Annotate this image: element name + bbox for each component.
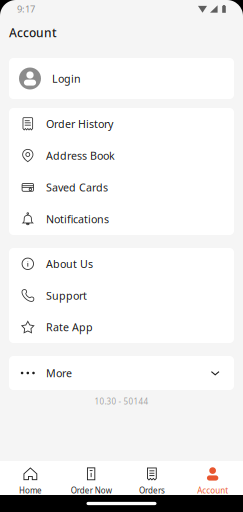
button[interactable]: More bbox=[9, 356, 234, 390]
staticText: About Us bbox=[46, 257, 93, 271]
staticText: Orders bbox=[139, 485, 165, 496]
button[interactable]: Support bbox=[9, 280, 234, 311]
button[interactable]: Address Book bbox=[9, 140, 234, 171]
staticText: 9:17 bbox=[17, 3, 35, 15]
button[interactable]: Notifications bbox=[9, 203, 234, 235]
staticText: Saved Cards bbox=[46, 180, 108, 194]
staticText: Home bbox=[19, 485, 42, 496]
staticText: Login bbox=[52, 71, 81, 86]
staticText: More bbox=[46, 366, 72, 380]
staticText: Account bbox=[9, 24, 57, 40]
button[interactable]: Login bbox=[9, 58, 234, 99]
button[interactable]: Saved Cards bbox=[9, 171, 234, 203]
staticText: Support bbox=[46, 288, 87, 303]
button[interactable]: About Us bbox=[9, 248, 234, 280]
button[interactable]: Orders bbox=[121, 461, 182, 495]
staticText: Rate App bbox=[46, 320, 93, 334]
button[interactable]: Rate App bbox=[9, 311, 234, 343]
button[interactable]: Order Now bbox=[61, 461, 122, 495]
button[interactable]: Account bbox=[182, 461, 243, 495]
button[interactable]: Order History bbox=[9, 108, 234, 140]
staticText: Order Now bbox=[71, 485, 112, 496]
staticText: Account bbox=[197, 485, 228, 496]
staticText: Notifications bbox=[46, 212, 109, 226]
staticText: Address Book bbox=[46, 149, 115, 163]
button[interactable]: Home bbox=[0, 461, 61, 495]
staticText: 10.30 - 50144 bbox=[94, 396, 148, 407]
staticText: Order History bbox=[46, 117, 113, 131]
